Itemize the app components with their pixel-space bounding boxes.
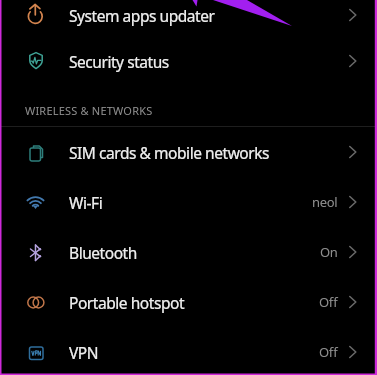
button[interactable]: VPN <box>0 327 377 375</box>
staticText: Portable hotspot <box>69 292 185 313</box>
button[interactable]: Wi-Fi <box>0 177 377 227</box>
staticText: System apps updater <box>69 5 215 26</box>
staticText: SIM cards & mobile networks <box>69 142 270 163</box>
staticText: Off <box>319 293 338 311</box>
staticText: Bluetooth <box>69 242 137 263</box>
staticText: Off <box>319 343 338 361</box>
button[interactable]: Bluetooth <box>0 227 377 277</box>
staticText: Wi-Fi <box>69 192 103 213</box>
button[interactable]: System apps updater <box>0 0 377 40</box>
staticText: neol <box>312 193 338 211</box>
button[interactable]: Portable hotspot <box>0 277 377 327</box>
button[interactable]: Security status <box>0 36 377 86</box>
staticText: On <box>320 243 338 261</box>
staticText: WIRELESS & NETWORKS <box>25 103 153 118</box>
button[interactable]: SIM cards & mobile networks <box>0 127 377 177</box>
staticText: Security status <box>69 51 169 72</box>
staticText: VPN <box>69 342 99 363</box>
